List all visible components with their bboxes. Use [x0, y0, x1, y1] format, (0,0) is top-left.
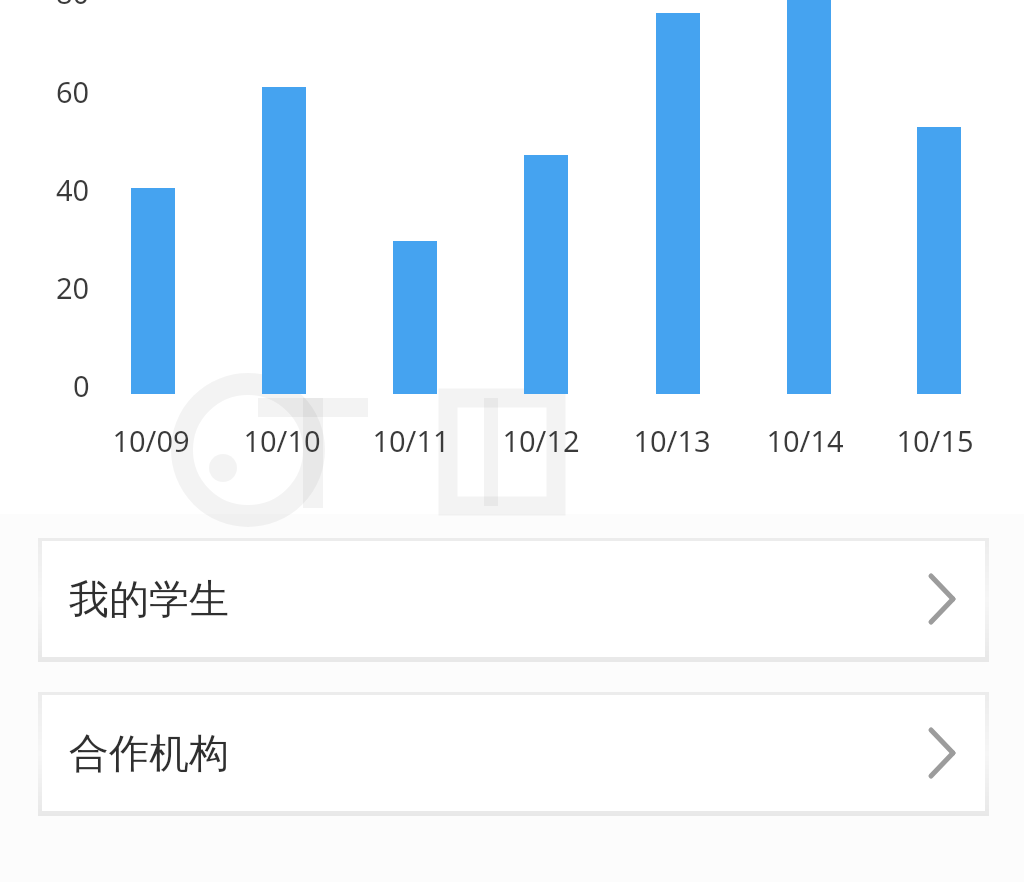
- staticText: 20: [56, 268, 90, 307]
- staticText: 10/15: [865, 421, 1005, 460]
- staticText: 60: [56, 72, 90, 111]
- staticText: 10/12: [471, 421, 611, 460]
- button[interactable]: 合作机构: [42, 695, 985, 811]
- staticText: 10/11: [341, 421, 481, 460]
- button[interactable]: 我的学生: [42, 541, 985, 657]
- staticText: 0: [73, 366, 90, 405]
- staticText: 80: [56, 0, 90, 12]
- staticText: 10/13: [602, 421, 742, 460]
- other: Open 我的学生: [929, 574, 955, 624]
- staticText: 10/09: [81, 421, 221, 460]
- staticText: 10/14: [735, 421, 875, 460]
- staticText: 40: [56, 170, 90, 209]
- staticText: 10/10: [212, 421, 352, 460]
- staticText: 合作机构: [69, 728, 229, 778]
- staticText: 我的学生: [69, 574, 229, 624]
- other: Open 合作机构: [929, 728, 955, 778]
